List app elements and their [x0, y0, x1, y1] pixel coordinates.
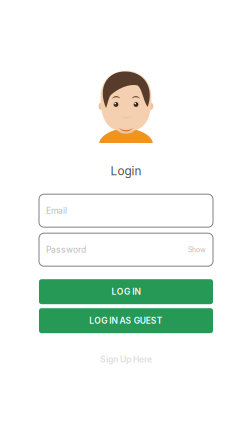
staticText: LOG IN: [111, 286, 140, 297]
button[interactable]: Sign Up Here: [100, 354, 152, 364]
staticText: LOG IN AS GUEST: [89, 315, 163, 326]
button[interactable]: LOG IN: [39, 279, 213, 304]
staticText: Email: [46, 205, 67, 216]
staticText: Login: [110, 164, 141, 178]
button[interactable]: Show: [188, 245, 206, 254]
staticText: Sign Up Here: [100, 354, 152, 364]
staticText: Password: [46, 244, 86, 255]
button[interactable]: LOG IN AS GUEST: [39, 308, 213, 333]
staticText: Show: [188, 245, 206, 254]
